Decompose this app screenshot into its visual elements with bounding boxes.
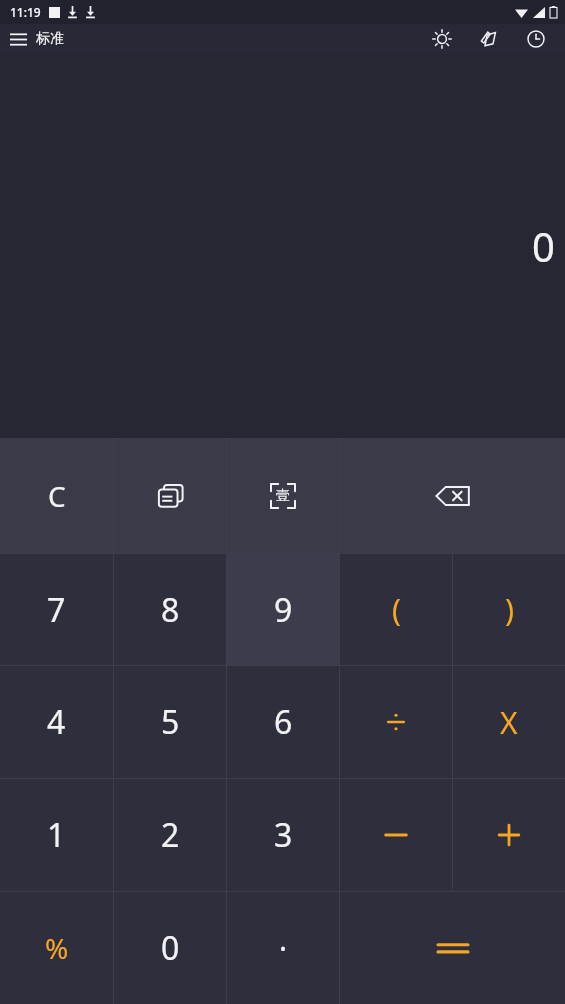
button[interactable]: 6 bbox=[227, 666, 339, 778]
button[interactable]: 0 bbox=[114, 892, 226, 1004]
button[interactable]: Clear bbox=[0, 438, 113, 553]
staticText: 3 bbox=[274, 813, 293, 857]
button[interactable]: 1 bbox=[0, 779, 113, 891]
staticText: C bbox=[48, 477, 66, 515]
button[interactable]: Theme bbox=[465, 24, 512, 54]
staticText: · bbox=[279, 928, 288, 969]
staticText: 6 bbox=[274, 700, 293, 744]
staticText: 标准 bbox=[36, 30, 64, 48]
button[interactable]: Minus bbox=[340, 779, 452, 891]
staticText: ) bbox=[505, 589, 514, 630]
staticText: 1 bbox=[47, 813, 66, 857]
button[interactable]: · bbox=[227, 892, 339, 1004]
button[interactable]: Plus bbox=[453, 779, 565, 891]
staticText: 壹 bbox=[276, 487, 290, 505]
button[interactable]: Backspace bbox=[340, 438, 565, 553]
button[interactable]: X bbox=[453, 666, 565, 778]
button[interactable]: 3 bbox=[227, 779, 339, 891]
button[interactable]: Brightness bbox=[418, 24, 465, 54]
button[interactable]: 7 bbox=[0, 554, 113, 665]
staticText: X bbox=[500, 702, 518, 743]
staticText: 7 bbox=[47, 588, 66, 632]
button[interactable]: Chinese numerals bbox=[227, 438, 339, 553]
button[interactable]: 9 bbox=[227, 554, 339, 665]
button[interactable]: ) bbox=[453, 554, 565, 665]
staticText: 11:19 bbox=[10, 4, 41, 20]
button[interactable]: Divide bbox=[340, 666, 452, 778]
staticText: ( bbox=[392, 589, 401, 630]
staticText: 8 bbox=[161, 588, 180, 632]
button[interactable]: 5 bbox=[114, 666, 226, 778]
button[interactable]: 8 bbox=[114, 554, 226, 665]
button[interactable]: Menu bbox=[0, 24, 36, 54]
button[interactable]: History bbox=[512, 24, 559, 54]
staticText: 0 bbox=[161, 926, 180, 970]
staticText: 0 bbox=[532, 219, 555, 273]
staticText: 4 bbox=[47, 700, 66, 744]
button[interactable]: ( bbox=[340, 554, 452, 665]
staticText: 9 bbox=[274, 588, 293, 632]
button[interactable]: Equals bbox=[340, 892, 565, 1004]
button[interactable]: Copy bbox=[114, 438, 226, 553]
button[interactable]: 4 bbox=[0, 666, 113, 778]
staticText: % bbox=[45, 929, 69, 967]
button[interactable]: 2 bbox=[114, 779, 226, 891]
staticText: 2 bbox=[161, 813, 180, 857]
staticText: 5 bbox=[161, 700, 180, 744]
button[interactable]: % bbox=[0, 892, 113, 1004]
